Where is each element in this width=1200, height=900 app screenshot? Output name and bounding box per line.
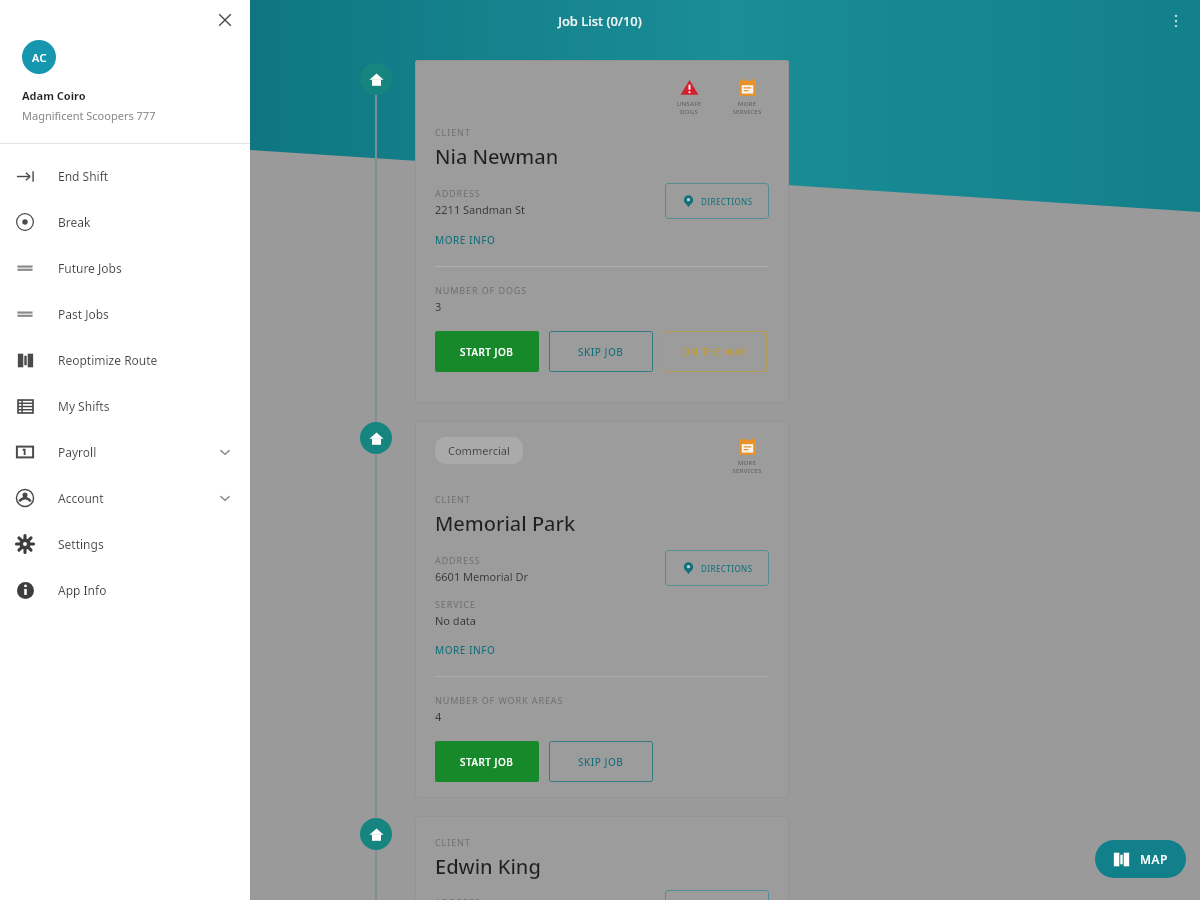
staticText: AC: [32, 50, 47, 65]
button[interactable]: Job stop: [360, 63, 392, 95]
staticText: ADDRESS: [435, 187, 481, 199]
staticText: Payroll: [58, 444, 218, 460]
button[interactable]: Account: [0, 475, 250, 521]
staticText: 4: [435, 709, 442, 724]
staticText: No data: [435, 613, 476, 628]
button[interactable]: Past Jobs: [0, 291, 250, 337]
button[interactable]: SKIP JOB: [549, 741, 653, 782]
button[interactable]: UNSAFE DOGS: [415, 60, 789, 403]
staticText: MORE SERVICES: [727, 459, 767, 475]
button[interactable]: Commercial: [435, 437, 523, 464]
staticText: 3: [435, 299, 442, 314]
button[interactable]: SKIP JOB: [549, 331, 653, 372]
staticText: 6601 Memorial Dr: [435, 569, 528, 584]
button[interactable]: MORE SERVICES: [727, 437, 767, 475]
staticText: Commercial: [448, 443, 510, 458]
staticText: Account: [58, 490, 218, 506]
button[interactable]: Job stop: [360, 818, 392, 850]
button[interactable]: DIRECTIONS: [665, 890, 769, 900]
staticText: ON THE WAY: [682, 345, 748, 359]
button[interactable]: End Shift: [0, 153, 250, 199]
staticText: Reoptimize Route: [58, 352, 232, 368]
staticText: CLIENT: [435, 493, 471, 505]
staticText: Future Jobs: [58, 260, 232, 276]
staticText: SKIP JOB: [578, 345, 624, 359]
button[interactable]: Reoptimize Route: [0, 337, 250, 383]
staticText: Nia Newman: [435, 143, 559, 170]
staticText: End Shift: [58, 168, 232, 184]
staticText: DIRECTIONS: [701, 196, 753, 207]
button[interactable]: Close drawer: [210, 5, 240, 35]
button[interactable]: MORE SERVICES: [727, 78, 767, 116]
staticText: Edwin King: [435, 853, 541, 880]
button[interactable]: START JOB: [435, 741, 539, 782]
staticText: DIRECTIONS: [701, 563, 753, 574]
button[interactable]: Commercial: [415, 421, 789, 798]
staticText: Job List (0/10): [558, 12, 642, 30]
button[interactable]: Job stop: [360, 422, 392, 454]
button[interactable]: CLIENT: [415, 816, 789, 900]
button[interactable]: Break: [0, 199, 250, 245]
staticText: CLIENT: [435, 126, 471, 138]
staticText: NUMBER OF WORK AREAS: [435, 694, 564, 706]
staticText: Magnificent Scoopers 777: [22, 108, 156, 123]
staticText: UNSAFE DOGS: [669, 100, 709, 116]
button[interactable]: Settings: [0, 521, 250, 567]
staticText: SKIP JOB: [578, 755, 624, 769]
staticText: NUMBER OF DOGS: [435, 284, 528, 296]
staticText: Past Jobs: [58, 306, 232, 322]
staticText: SERVICE: [435, 598, 476, 610]
staticText: My Shifts: [58, 398, 232, 414]
button[interactable]: DIRECTIONS: [665, 183, 769, 219]
button[interactable]: START JOB: [435, 331, 539, 372]
staticText: MAP: [1140, 851, 1168, 867]
button[interactable]: My Shifts: [0, 383, 250, 429]
staticText: START JOB: [460, 345, 514, 359]
staticText: Memorial Park: [435, 510, 576, 537]
button[interactable]: UNSAFE DOGS: [669, 78, 709, 116]
button[interactable]: MAP: [1095, 840, 1186, 878]
staticText: Break: [58, 214, 232, 230]
button[interactable]: ON THE WAY: [663, 331, 767, 372]
staticText: CLIENT: [435, 836, 471, 848]
staticText: MORE SERVICES: [727, 100, 767, 116]
staticText: Settings: [58, 536, 232, 552]
button[interactable]: Payroll: [0, 429, 250, 475]
staticText: 2211 Sandman St: [435, 202, 525, 217]
staticText: START JOB: [460, 755, 514, 769]
button[interactable]: DIRECTIONS: [665, 550, 769, 586]
staticText: Adam Coiro: [22, 88, 86, 103]
button[interactable]: App Info: [0, 567, 250, 613]
button[interactable]: MORE INFO: [435, 643, 496, 657]
staticText: ADDRESS: [435, 554, 481, 566]
button[interactable]: More options: [1158, 3, 1194, 39]
staticText: ADDRESS: [435, 896, 665, 900]
button[interactable]: MORE INFO: [435, 233, 496, 247]
staticText: App Info: [58, 582, 232, 598]
button[interactable]: Future Jobs: [0, 245, 250, 291]
